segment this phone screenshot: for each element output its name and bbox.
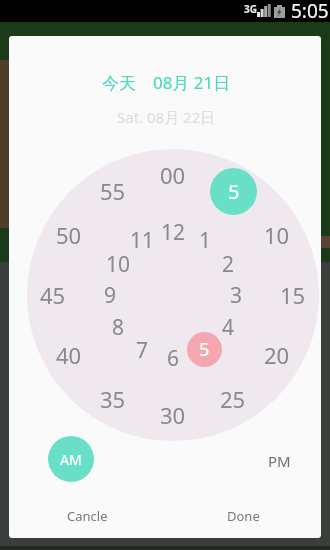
button[interactable]: Cancle xyxy=(9,494,165,538)
staticText: AM xyxy=(60,450,82,469)
staticText: 1 xyxy=(199,226,212,255)
staticText: 10 xyxy=(106,250,131,279)
staticText: 00 xyxy=(160,160,186,190)
staticText: 50 xyxy=(56,220,82,250)
button[interactable]: AM xyxy=(48,436,94,482)
staticText: 10 xyxy=(264,220,290,250)
staticText: 5 xyxy=(199,337,210,362)
staticText: 11 xyxy=(130,226,155,255)
staticText: 7 xyxy=(136,336,149,365)
staticText: Sat. 08月 22日 xyxy=(117,107,216,127)
staticText: 5:05 xyxy=(291,0,329,24)
staticText: 12 xyxy=(161,218,186,247)
staticText: 4 xyxy=(222,313,235,342)
staticText: Cancle xyxy=(67,507,108,525)
staticText: 35 xyxy=(100,384,126,414)
staticText: 9 xyxy=(104,281,117,310)
button[interactable]: 5 xyxy=(187,332,222,367)
staticText: 8 xyxy=(112,313,125,342)
staticText: 55 xyxy=(100,176,126,206)
button[interactable]: 5 xyxy=(210,168,257,215)
staticText: 25 xyxy=(220,384,246,414)
staticText: 3 xyxy=(230,281,243,310)
staticText: 20 xyxy=(264,340,290,370)
staticText: 2 xyxy=(222,250,235,279)
staticText: PM xyxy=(268,451,291,471)
button[interactable]: Done xyxy=(165,494,321,538)
staticText: 5 xyxy=(228,178,240,205)
staticText: 40 xyxy=(56,340,82,370)
staticText: 15 xyxy=(280,280,306,310)
button[interactable]: PM xyxy=(189,443,321,479)
staticText: Done xyxy=(227,507,260,525)
staticText: 6 xyxy=(167,344,180,373)
staticText: 30 xyxy=(160,400,186,430)
staticText: 45 xyxy=(40,280,66,310)
button[interactable]: 今天 08月 21日 xyxy=(76,64,256,100)
staticText: 今天 08月 21日 xyxy=(102,71,231,94)
staticText: 3G xyxy=(244,2,257,16)
